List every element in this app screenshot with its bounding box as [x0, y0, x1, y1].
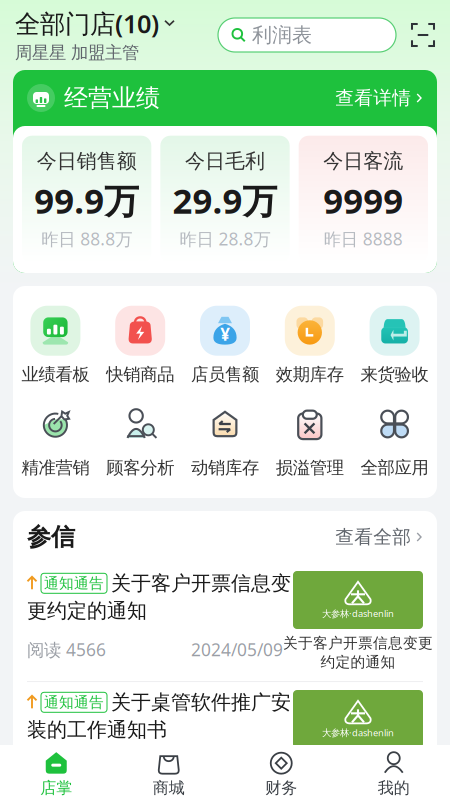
button[interactable]: 店掌 [0, 745, 112, 800]
staticText: 参信 [27, 522, 75, 552]
button[interactable]: 商城 [112, 745, 225, 800]
staticText: 大参林·dashenlin [322, 607, 394, 620]
staticText: 昨日 28.8万 [179, 227, 270, 250]
button[interactable]: 动销库存 [183, 399, 267, 478]
button[interactable]: 我的 [337, 745, 450, 800]
button[interactable]: 效期库存 [267, 306, 352, 385]
staticText: 快销商品 [106, 364, 174, 385]
staticText: 店员售额 [191, 364, 259, 385]
button[interactable]: 利润表 [218, 18, 396, 52]
staticText: 9999 [323, 177, 403, 223]
button[interactable]: 全部应用 [352, 399, 437, 478]
button[interactable]: 来货验收 [352, 306, 437, 385]
staticText: 商城 [153, 778, 185, 798]
button[interactable]: 损溢管理 [267, 399, 352, 478]
staticText: ¥ [221, 324, 229, 343]
button[interactable]: 通知通告 [27, 571, 423, 671]
staticText: 关于客户开票信息变更 [283, 634, 433, 652]
button[interactable]: 全部门店(10) [15, 6, 175, 63]
staticText: 我的 [378, 778, 410, 798]
button[interactable]: 查看详情 [335, 86, 423, 109]
staticText: 通知通告 [44, 574, 104, 592]
staticText: 损溢管理 [276, 457, 344, 478]
staticText: 装的工作通知书 [27, 718, 167, 742]
staticText: 关于桌管软件推广安 [111, 690, 291, 715]
staticText: 阅读 4566 [27, 638, 106, 661]
button[interactable]: 精准营销 [13, 399, 98, 478]
staticText: 29.9万 [172, 177, 277, 223]
staticText: 关于客户开票信息变 [111, 571, 291, 596]
button[interactable]: 查看全部 [335, 525, 423, 548]
staticText: 精准营销 [21, 457, 89, 478]
staticText: 动销库存 [191, 457, 259, 478]
staticText: 约定的通知 [320, 653, 395, 671]
staticText: 经营业绩 [64, 83, 160, 113]
button[interactable]: 通知通告 [27, 690, 423, 790]
staticText: 今日客流 [323, 149, 403, 173]
staticText: 昨日 8888 [324, 227, 403, 250]
staticText: 查看全部 [335, 525, 411, 548]
button[interactable]: ¥ [183, 306, 267, 385]
staticText: 昨日 88.8万 [41, 227, 132, 250]
staticText: 大参林·dashenlin [322, 726, 394, 739]
staticText: 今日毛利 [185, 149, 265, 173]
staticText: 查看详情 [335, 86, 411, 109]
staticText: 更约定的通知 [27, 599, 147, 623]
staticText: 顾客分析 [106, 457, 174, 478]
staticText: 全部门店(10) [15, 6, 159, 40]
button[interactable]: 扫一扫 [411, 23, 435, 47]
staticText: 全部应用 [361, 457, 429, 478]
button[interactable]: 业绩看板 [13, 306, 98, 385]
staticText: 通知通告 [44, 693, 104, 711]
staticText: 利润表 [252, 23, 312, 47]
staticText: 店掌 [40, 778, 72, 798]
button[interactable]: 顾客分析 [98, 399, 183, 478]
staticText: 关于桌管软件推广安装 [283, 753, 433, 771]
staticText: 今日销售额 [37, 149, 137, 173]
button[interactable]: 快销商品 [98, 306, 183, 385]
staticText: 来货验收 [361, 364, 429, 385]
staticText: 业绩看板 [21, 364, 89, 385]
staticText: 效期库存 [276, 364, 344, 385]
staticText: 99.9万 [34, 177, 139, 223]
staticText: 周星星 加盟主管 [15, 42, 139, 63]
staticText: 财务 [265, 778, 297, 798]
staticText: 的工作通知书 [313, 772, 403, 790]
staticText: 2024/05/09 [191, 638, 283, 661]
button[interactable]: 财务 [225, 745, 337, 800]
